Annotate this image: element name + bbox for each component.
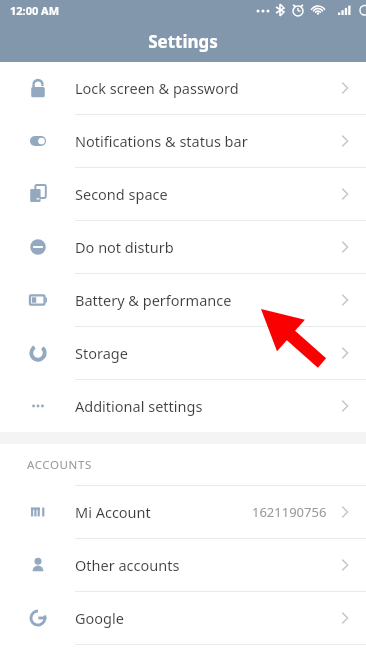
- staticText: Notifications & status bar: [75, 131, 248, 151]
- button[interactable]: Google: [0, 592, 366, 644]
- staticText: Other accounts: [75, 555, 180, 575]
- staticText: Lock screen & password: [75, 78, 239, 98]
- staticText: 1621190756: [252, 503, 327, 521]
- staticText: Do not disturb: [75, 237, 174, 257]
- staticText: Additional settings: [75, 396, 203, 416]
- button[interactable]: Do not disturb: [0, 221, 366, 273]
- button[interactable]: Notifications & status bar: [0, 115, 366, 167]
- button[interactable]: Battery & performance: [0, 274, 366, 326]
- button[interactable]: Other accounts: [0, 539, 366, 591]
- staticText: 12:00 AM: [10, 3, 60, 18]
- staticText: Settings: [148, 30, 218, 53]
- button[interactable]: Mi Account: [0, 486, 366, 538]
- button[interactable]: Second space: [0, 168, 366, 220]
- staticText: Second space: [75, 184, 168, 204]
- button[interactable]: Storage: [0, 327, 366, 379]
- staticText: Google: [75, 608, 124, 628]
- staticText: ACCOUNTS: [27, 457, 92, 473]
- staticText: Storage: [75, 343, 128, 363]
- button[interactable]: Additional settings: [0, 380, 366, 432]
- button[interactable]: Lock screen & password: [0, 62, 366, 114]
- staticText: Mi Account: [75, 502, 151, 522]
- staticText: Battery & performance: [75, 290, 232, 310]
